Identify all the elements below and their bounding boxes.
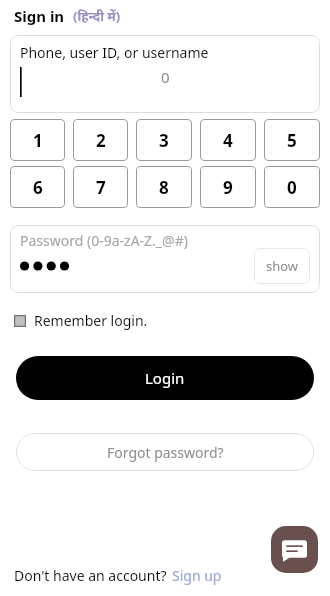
staticText: 9 bbox=[223, 176, 233, 199]
button[interactable]: Phone, user ID, or username bbox=[10, 35, 320, 113]
staticText: 4 bbox=[223, 129, 233, 152]
staticText: Sign in bbox=[14, 6, 65, 26]
staticText: 7 bbox=[96, 176, 106, 199]
button[interactable]: 3 bbox=[136, 119, 192, 161]
staticText: Forgot password? bbox=[107, 443, 224, 462]
staticText: 8 bbox=[159, 176, 169, 199]
button[interactable]: Sign up bbox=[172, 566, 222, 585]
staticText: show bbox=[266, 257, 299, 275]
staticText: Phone, user ID, or username bbox=[20, 43, 209, 62]
staticText: Password (0-9a-zA-Z._@#) bbox=[20, 231, 188, 250]
button[interactable]: 4 bbox=[200, 119, 256, 161]
staticText: 2 bbox=[96, 129, 106, 152]
button[interactable]: Remember login. bbox=[14, 311, 148, 330]
button[interactable]: (हिन्दी में) bbox=[73, 7, 121, 25]
button[interactable]: 6 bbox=[10, 166, 65, 208]
button[interactable]: show bbox=[254, 248, 310, 284]
staticText: 0 bbox=[287, 176, 297, 199]
staticText: 1 bbox=[33, 129, 43, 152]
staticText: (हिन्दी में) bbox=[73, 7, 121, 25]
staticText: Don't have an account? bbox=[14, 566, 167, 585]
staticText: Sign up bbox=[172, 566, 222, 585]
staticText: 0 bbox=[161, 67, 170, 87]
button[interactable]: Forgot password? bbox=[16, 433, 314, 471]
button[interactable]: 7 bbox=[73, 166, 128, 208]
button[interactable]: 5 bbox=[264, 119, 320, 161]
button[interactable]: 9 bbox=[200, 166, 256, 208]
button[interactable]: 2 bbox=[73, 119, 128, 161]
button[interactable]: Login bbox=[16, 356, 314, 400]
button[interactable]: 1 bbox=[10, 119, 65, 161]
button[interactable]: 8 bbox=[136, 166, 192, 208]
staticText: Remember login. bbox=[34, 311, 148, 330]
staticText: 6 bbox=[33, 176, 43, 199]
button[interactable]: Messages bbox=[271, 526, 318, 573]
staticText: 5 bbox=[287, 129, 297, 152]
button[interactable]: Password (0-9a-zA-Z._@#) bbox=[10, 225, 320, 293]
button[interactable]: 0 bbox=[264, 166, 320, 208]
staticText: Login bbox=[145, 368, 185, 388]
staticText: 3 bbox=[159, 129, 169, 152]
